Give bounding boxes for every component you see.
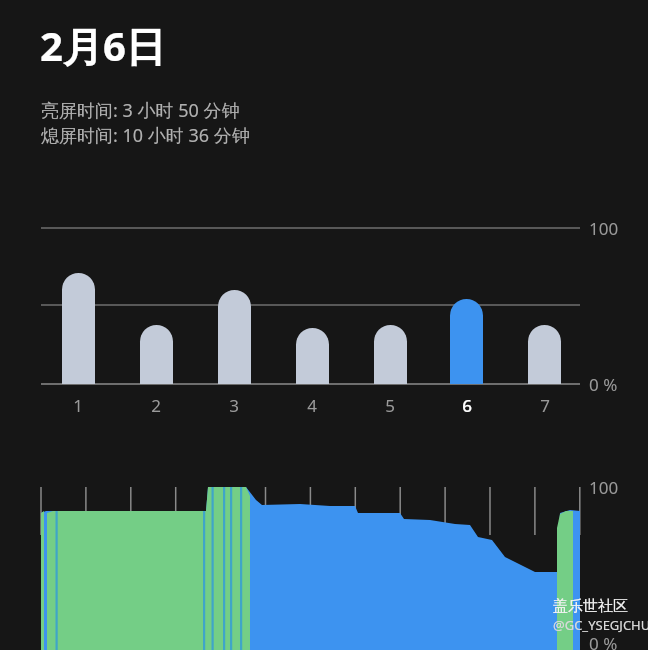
staticText: 熄屏时间: 10 小时 36 分钟 [41,123,250,148]
staticText: 2月6日 [40,18,166,73]
staticText: 3 [229,394,239,417]
staticText: 2 [151,394,161,417]
staticText: 100 [589,476,619,499]
staticText: 亮屏时间: 3 小时 50 分钟 [41,98,240,123]
staticText: 7 [540,394,550,417]
button[interactable]: 4 [298,392,326,418]
staticText: 5 [385,394,395,417]
button[interactable]: 6 [453,392,481,418]
button[interactable]: 1 [64,392,92,418]
staticText: 100 [589,217,619,240]
staticText: 6 [462,394,472,417]
staticText: 盖乐世社区 [553,597,628,616]
button[interactable]: 5 [376,392,404,418]
staticText: 4 [307,394,317,417]
button[interactable]: 2 [142,392,170,418]
staticText: 0 % [589,373,618,396]
button[interactable]: 3 [220,392,248,418]
staticText: 1 [73,394,83,417]
button[interactable]: 2月6日 [40,18,166,73]
button[interactable]: 7 [531,392,559,418]
staticText: @GC_YSEGJCHU [553,616,648,634]
button[interactable]: Daily battery usage bar chart [0,0,648,650]
staticText: 0 % [589,632,618,650]
